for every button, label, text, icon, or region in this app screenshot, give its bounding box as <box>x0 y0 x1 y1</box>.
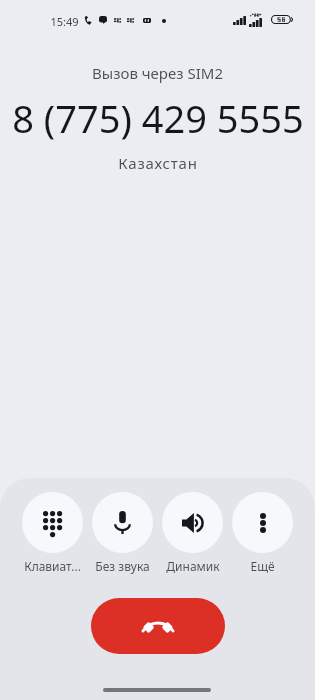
staticText: Клавиат... <box>24 558 81 574</box>
staticText: 15:49 <box>50 14 79 29</box>
staticText: 8 (775) 429 5555 <box>12 92 304 144</box>
staticText: Без звука <box>95 558 150 574</box>
button[interactable]: End call <box>91 598 225 654</box>
button[interactable]: Ещё <box>232 492 293 574</box>
staticText: Динамик <box>166 558 220 574</box>
button[interactable]: Динамик <box>162 492 223 574</box>
staticText: Ещё <box>250 558 275 574</box>
staticText: Вызов через SIM2 <box>92 63 223 83</box>
button[interactable]: Без звука <box>92 492 153 574</box>
button[interactable]: Клавиат... <box>22 492 83 574</box>
staticText: Казахстан <box>118 153 198 173</box>
